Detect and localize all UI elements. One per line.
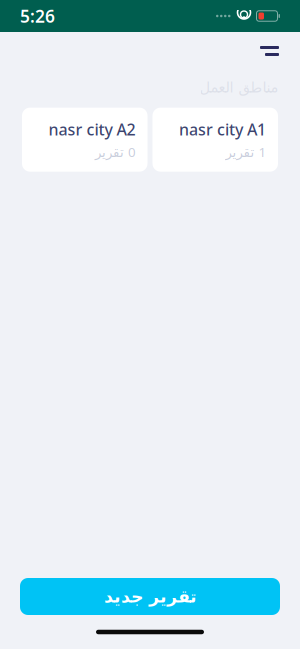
staticText: تقرير جديد bbox=[103, 587, 196, 606]
button[interactable]: Menu bbox=[250, 37, 289, 65]
button[interactable]: تقرير جديد bbox=[20, 578, 280, 615]
button[interactable]: nasr city A1 bbox=[152, 108, 278, 172]
staticText: nasr city A2 bbox=[48, 119, 135, 140]
staticText: 5:26 bbox=[20, 4, 55, 27]
staticText: مناطق العمل bbox=[199, 79, 278, 96]
button[interactable]: nasr city A2 bbox=[22, 108, 147, 172]
staticText: 0 تقرير bbox=[94, 143, 135, 161]
staticText: nasr city A1 bbox=[179, 119, 266, 140]
staticText: 1 تقرير bbox=[225, 143, 266, 161]
